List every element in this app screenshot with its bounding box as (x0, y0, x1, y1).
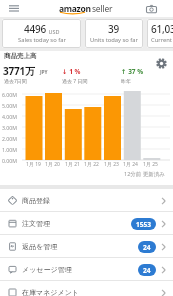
staticText: Units today so far (90, 36, 139, 44)
staticText: 1.00M (2, 146, 17, 153)
staticText: ↑ 37 % (121, 67, 144, 76)
staticText: seller (92, 3, 113, 15)
staticText: 3.00M (2, 124, 17, 131)
staticText: 4496 (24, 22, 47, 36)
staticText: 商品登録 (22, 196, 50, 205)
staticText: 1月 21 (65, 161, 80, 168)
staticText: 5.00M (2, 102, 17, 109)
button[interactable]: 在庫マネジメント (0, 281, 173, 296)
staticText: 39 (108, 22, 120, 36)
staticText: 61,035 (151, 22, 173, 36)
button[interactable]: 39 (85, 19, 143, 48)
staticText: 商品売上高 (4, 52, 37, 60)
button[interactable] (146, 5, 157, 13)
staticText: 2.00M (2, 135, 17, 142)
staticText: 24 (143, 243, 151, 252)
staticText: Sales today so far (18, 36, 66, 44)
staticText: 24 (143, 266, 151, 275)
staticText: 12分前 更新済み (124, 170, 165, 178)
button[interactable] (155, 57, 168, 70)
button[interactable]: 注文管理 (0, 212, 173, 235)
staticText: 過去 7 日間 (62, 78, 88, 85)
button[interactable]: 4496 (2, 19, 81, 48)
staticText: 1月 20 (45, 161, 60, 168)
staticText: 1月 25 (143, 161, 158, 168)
button[interactable]: 61,035 (147, 19, 173, 48)
staticText: 在庫マネジメント (22, 288, 79, 296)
staticText: 注文管理 (22, 219, 50, 228)
staticText: USD (47, 28, 60, 35)
staticText: 6.00M (2, 91, 17, 98)
staticText: JPY (40, 69, 48, 76)
staticText: 1月 23 (104, 161, 119, 168)
button[interactable] (9, 5, 19, 12)
staticText: メッセージ管理 (22, 265, 72, 274)
staticText: 4.00M (2, 113, 17, 120)
staticText: 過去7日間 (4, 78, 27, 85)
staticText: 0.00M (2, 157, 17, 164)
staticText: 3771万 (3, 64, 35, 78)
staticText: 返品を管理 (22, 242, 58, 251)
staticText: amazon (59, 3, 91, 15)
button[interactable]: 商品登録 (0, 189, 173, 212)
staticText: 1月 22 (84, 161, 99, 168)
staticText: 1月 19 (26, 161, 41, 168)
button[interactable]: 返品を管理 (0, 235, 173, 258)
staticText: 1月 24 (123, 161, 138, 168)
staticText: ↓ 1 % (62, 67, 81, 76)
button[interactable]: メッセージ管理 (0, 258, 173, 281)
staticText: Current balance (151, 36, 173, 44)
staticText: 1553 (136, 220, 151, 229)
staticText: 昨年 (121, 78, 131, 84)
